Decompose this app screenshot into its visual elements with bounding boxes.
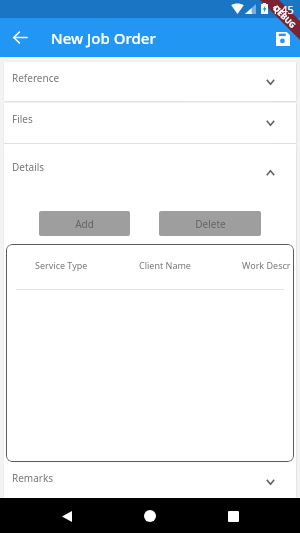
staticText: DEBUG (271, 3, 299, 30)
button[interactable]: Back (51, 500, 83, 532)
staticText: Service Type (35, 259, 88, 271)
staticText: Remarks (12, 471, 54, 485)
button[interactable]: Expand (262, 74, 278, 90)
button[interactable]: Details (4, 144, 296, 190)
button[interactable]: Home (134, 500, 166, 532)
button[interactable]: Add (39, 211, 130, 236)
staticText: Add (75, 217, 94, 231)
staticText: Files (12, 112, 33, 126)
staticText: 1:45 (272, 2, 294, 17)
staticText: Work Descr (242, 259, 291, 271)
button[interactable]: Recent apps (217, 500, 249, 532)
button[interactable]: Save (261, 18, 300, 57)
button[interactable]: Expand (262, 474, 278, 490)
staticText: Details (12, 160, 45, 174)
button[interactable]: Remarks (4, 463, 296, 498)
staticText: Delete (195, 217, 226, 231)
button[interactable]: Delete (159, 211, 261, 236)
staticText: Client Name (139, 259, 191, 271)
staticText: New Job Order (51, 28, 156, 48)
button[interactable]: Expand (262, 115, 278, 131)
button[interactable]: Back (0, 18, 39, 57)
button[interactable]: Collapse (262, 165, 278, 181)
button[interactable]: Files (4, 103, 296, 143)
button[interactable]: Reference (4, 62, 296, 101)
staticText: Reference (12, 71, 60, 85)
